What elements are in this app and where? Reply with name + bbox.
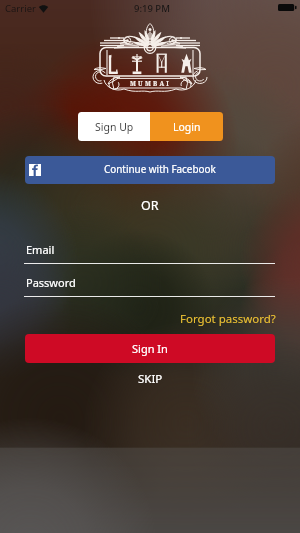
button[interactable]: Forgot password? bbox=[176, 310, 276, 327]
other: Facebook bbox=[29, 164, 41, 176]
staticText: M U M B A I bbox=[130, 79, 170, 87]
staticText: SKIP bbox=[138, 371, 163, 387]
staticText: Continue with Facebook bbox=[104, 162, 216, 175]
button[interactable]: Login bbox=[150, 112, 223, 141]
staticText: Forgot password? bbox=[180, 311, 276, 327]
button[interactable]: Password bbox=[24, 274, 275, 297]
staticText: Password bbox=[26, 275, 76, 290]
button[interactable]: SKIP bbox=[120, 370, 180, 388]
staticText: Sign Up bbox=[95, 120, 134, 134]
staticText: 9:19 PM bbox=[134, 2, 170, 15]
staticText: Login bbox=[173, 120, 201, 134]
staticText: Email bbox=[26, 242, 55, 257]
staticText: Sign In bbox=[132, 341, 168, 356]
button[interactable]: Email bbox=[24, 241, 275, 264]
button[interactable]: Sign In bbox=[25, 334, 275, 363]
button[interactable]: Sign Up bbox=[78, 112, 150, 141]
staticText: Carrier bbox=[5, 2, 36, 15]
button[interactable]: Continue with Facebook bbox=[25, 156, 275, 184]
staticText: OR bbox=[141, 197, 159, 214]
